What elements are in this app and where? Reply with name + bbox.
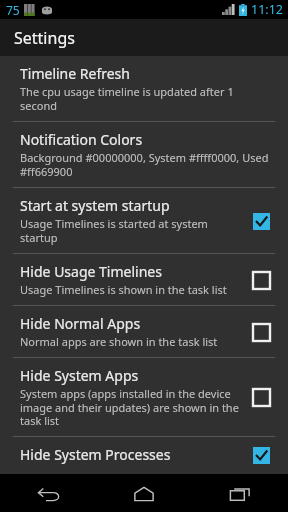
button[interactable]: Start at system startup bbox=[0, 188, 288, 253]
staticText: Hide Usage Timelines bbox=[20, 262, 162, 281]
staticText: Hide System Apps bbox=[20, 366, 139, 385]
button[interactable]: Unchecked bbox=[246, 382, 276, 412]
button[interactable]: Unchecked bbox=[246, 317, 276, 347]
staticText: 75 bbox=[6, 2, 20, 18]
button[interactable]: Unchecked bbox=[246, 265, 276, 295]
staticText: Notification Colors bbox=[20, 130, 143, 149]
staticText: Hide Normal Apps bbox=[20, 314, 141, 333]
button[interactable]: Home bbox=[96, 474, 192, 512]
button[interactable]: Notification Colors bbox=[0, 122, 288, 187]
button[interactable]: Hide Usage Timelines bbox=[0, 254, 288, 305]
staticText: Background #00000000, System #ffff0000, … bbox=[20, 150, 270, 179]
staticText: Start at system startup bbox=[20, 196, 170, 215]
button[interactable]: Hide System Apps bbox=[0, 358, 288, 436]
staticText: 11:12 bbox=[251, 1, 283, 18]
staticText: System apps (apps installed in the devic… bbox=[20, 386, 240, 428]
staticText: Usage Timelines is started at system sta… bbox=[20, 216, 240, 245]
button[interactable]: Checked bbox=[246, 206, 276, 236]
button[interactable]: Recent apps bbox=[192, 474, 288, 512]
staticText: Normal apps are shown in the task list bbox=[20, 334, 218, 349]
button[interactable]: Hide Normal Apps bbox=[0, 306, 288, 357]
staticText: Timeline Refresh bbox=[20, 64, 130, 83]
button[interactable]: Hide System Processes bbox=[0, 437, 288, 474]
staticText: Usage Timelines is shown in the task lis… bbox=[20, 282, 227, 297]
staticText: The cpu usage timeline is updated after … bbox=[20, 84, 270, 113]
button[interactable]: Checked bbox=[246, 445, 276, 466]
staticText: Settings bbox=[14, 27, 75, 49]
button[interactable]: Back bbox=[0, 474, 96, 512]
button[interactable]: Timeline Refresh bbox=[0, 56, 288, 121]
staticText: Hide System Processes bbox=[20, 445, 171, 464]
